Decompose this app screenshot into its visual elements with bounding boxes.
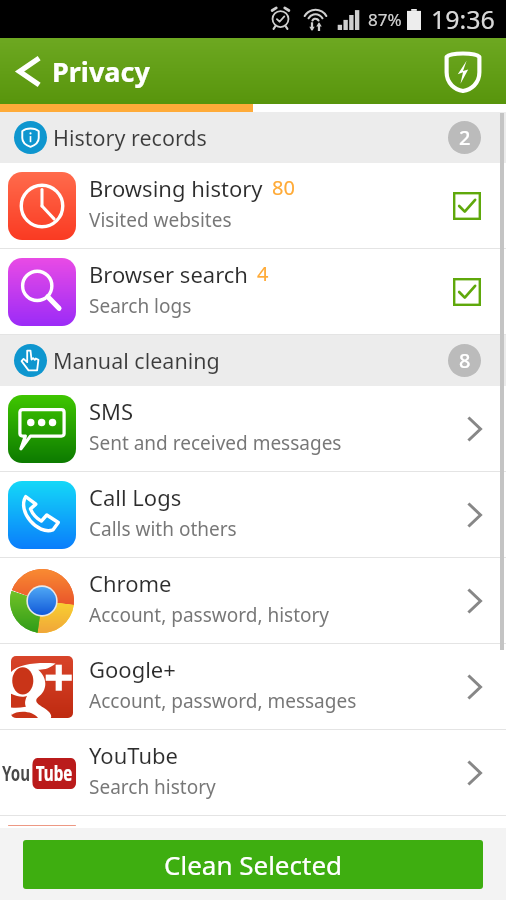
staticText: 2 bbox=[459, 124, 471, 151]
staticText: 4 bbox=[257, 260, 269, 287]
staticText: Browsing history bbox=[89, 173, 263, 203]
button[interactable]: History records bbox=[0, 112, 506, 163]
staticText: SMS bbox=[89, 396, 134, 426]
staticText: Account, password, history bbox=[89, 602, 330, 628]
button[interactable]: Back bbox=[8, 52, 46, 90]
staticText: Search logs bbox=[89, 293, 192, 319]
button[interactable]: SMS bbox=[0, 386, 506, 471]
staticText: 87% bbox=[368, 8, 402, 31]
staticText: Chrome bbox=[89, 568, 172, 598]
staticText: Call Logs bbox=[89, 482, 182, 512]
button[interactable]: Manual cleaning bbox=[0, 335, 506, 386]
button[interactable]: Call Logs bbox=[0, 472, 506, 557]
staticText: YouTube bbox=[89, 740, 178, 770]
staticText: You bbox=[2, 759, 30, 788]
staticText: Calls with others bbox=[89, 516, 237, 542]
staticText: 19:36 bbox=[431, 2, 495, 36]
staticText: Manual cleaning bbox=[53, 346, 220, 375]
staticText: Privacy bbox=[52, 53, 150, 90]
button[interactable]: Google+ bbox=[0, 644, 506, 729]
staticText: 8 bbox=[459, 347, 471, 374]
button[interactable]: Clean Selected bbox=[23, 840, 483, 889]
staticText: Visited websites bbox=[89, 207, 232, 233]
staticText: Search history bbox=[89, 774, 216, 800]
staticText: Sent and received messages bbox=[89, 430, 342, 456]
staticText: History records bbox=[53, 123, 207, 152]
staticText: Account, password, messages bbox=[89, 688, 357, 714]
button[interactable]: Browsing history bbox=[0, 163, 506, 248]
staticText: 80 bbox=[272, 174, 295, 201]
button[interactable]: Browser search bbox=[0, 249, 506, 334]
button[interactable]: You bbox=[0, 730, 506, 815]
staticText: Google+ bbox=[89, 654, 176, 684]
button[interactable]: Chrome bbox=[0, 558, 506, 643]
staticText: Tube bbox=[36, 759, 72, 788]
staticText: Browser search bbox=[89, 259, 248, 289]
staticText: Clean Selected bbox=[164, 847, 343, 882]
button[interactable]: Security boost bbox=[441, 49, 485, 93]
button[interactable] bbox=[0, 816, 506, 828]
